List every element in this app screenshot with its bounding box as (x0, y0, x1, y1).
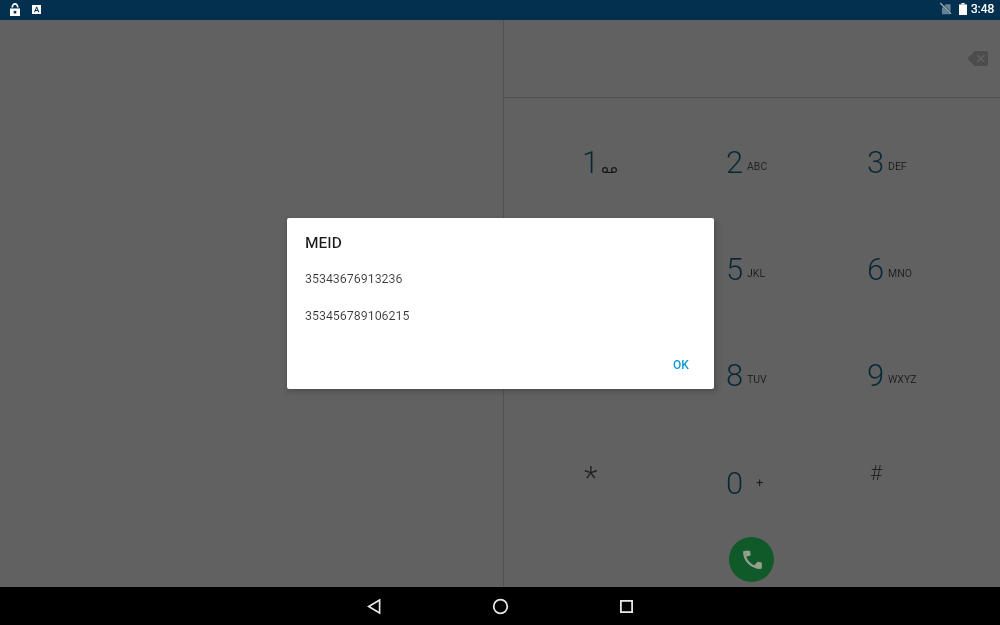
button[interactable] (695, 322, 839, 428)
button[interactable] (836, 322, 980, 428)
button[interactable]: Recents (563, 587, 689, 625)
staticText: # (870, 461, 883, 486)
button[interactable] (695, 109, 839, 215)
staticText: MEID (305, 234, 342, 252)
button[interactable]: Home (437, 587, 563, 625)
staticText: 9 (867, 357, 885, 393)
staticText: TUV (747, 373, 767, 385)
staticText: 8 (726, 357, 744, 393)
button[interactable] (695, 430, 839, 536)
button[interactable] (551, 109, 695, 215)
staticText: ABC (747, 160, 768, 172)
button[interactable]: Backspace (956, 36, 1000, 80)
button[interactable] (551, 216, 695, 322)
button[interactable] (551, 322, 695, 428)
staticText: JKL (747, 267, 766, 279)
button[interactable] (551, 430, 695, 536)
staticText: 0 (726, 465, 744, 501)
staticText: A (34, 5, 40, 14)
staticText: WXYZ (888, 373, 917, 385)
button[interactable] (836, 216, 980, 322)
staticText: 3:48 (971, 2, 995, 16)
staticText: 353456789106215 (305, 308, 410, 323)
button[interactable]: Back (311, 587, 437, 625)
staticText: 2 (726, 144, 744, 180)
staticText: + (756, 475, 764, 490)
button[interactable] (695, 216, 839, 322)
button[interactable] (836, 430, 980, 536)
staticText: DEF (888, 160, 907, 172)
staticText: 5 (726, 251, 744, 287)
staticText: 7 (582, 357, 600, 393)
staticText: 3 (867, 144, 885, 180)
staticText: 1 (582, 144, 600, 180)
staticText: 6 (867, 251, 885, 287)
button[interactable]: OK (664, 352, 698, 378)
staticText: OK (673, 358, 689, 372)
button[interactable] (836, 109, 980, 215)
staticText: MNO (888, 267, 912, 279)
button[interactable]: Call (729, 537, 774, 582)
staticText: 35343676913236 (305, 271, 403, 286)
staticText: * (584, 458, 598, 496)
